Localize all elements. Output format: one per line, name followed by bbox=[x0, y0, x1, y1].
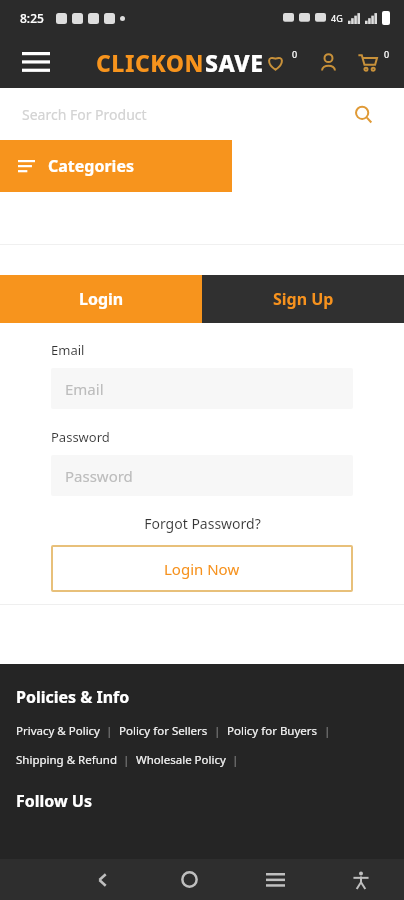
button[interactable]: Forgot Password? bbox=[51, 514, 353, 533]
staticText: Follow Us bbox=[16, 790, 92, 812]
staticText: Privacy & Policy bbox=[16, 723, 100, 739]
staticText: Sign Up bbox=[273, 288, 334, 310]
button[interactable]: Shipping & Refund bbox=[16, 752, 117, 768]
staticText: Password bbox=[51, 428, 110, 446]
button[interactable]: Search bbox=[350, 101, 376, 127]
staticText: SAVE bbox=[205, 47, 264, 78]
staticText: Forgot Password? bbox=[144, 514, 261, 533]
button[interactable]: Login bbox=[0, 275, 202, 323]
staticText: Login Now bbox=[164, 559, 240, 579]
staticText: Categories bbox=[48, 155, 134, 177]
button[interactable]: Recents bbox=[232, 859, 318, 900]
button[interactable]: Home bbox=[146, 859, 232, 900]
button[interactable]: Wholesale Policy bbox=[136, 752, 226, 768]
staticText: Policies & Info bbox=[16, 686, 130, 708]
staticText: | bbox=[232, 752, 239, 768]
button[interactable]: Email bbox=[65, 368, 353, 409]
staticText: 0 bbox=[384, 48, 390, 60]
staticText: Shipping & Refund bbox=[16, 752, 117, 768]
button[interactable]: Search For Product bbox=[0, 88, 404, 140]
button[interactable]: Categories bbox=[18, 140, 232, 192]
button[interactable]: Policy for Sellers bbox=[119, 723, 208, 739]
button[interactable]: Accessibility bbox=[318, 859, 404, 900]
button[interactable]: Account bbox=[314, 48, 342, 76]
button[interactable]: Cart bbox=[358, 48, 390, 76]
staticText: Email bbox=[51, 341, 85, 359]
staticText: Email bbox=[65, 379, 104, 399]
button[interactable]: Privacy & Policy bbox=[16, 723, 100, 739]
button[interactable]: Menu bbox=[16, 42, 56, 82]
staticText: CLICKON bbox=[96, 47, 205, 78]
button[interactable]: Wishlist bbox=[266, 48, 298, 76]
staticText: 0 bbox=[292, 48, 298, 60]
staticText: Policy for Buyers bbox=[227, 723, 318, 739]
button[interactable]: Policy for Buyers bbox=[227, 723, 318, 739]
staticText: Password bbox=[65, 466, 133, 486]
staticText: | bbox=[123, 752, 130, 768]
staticText: Login bbox=[79, 288, 124, 310]
staticText: | bbox=[324, 723, 331, 739]
button[interactable]: Sign Up bbox=[202, 275, 404, 323]
button[interactable]: Login Now bbox=[51, 545, 353, 592]
button[interactable]: Password bbox=[65, 455, 353, 496]
staticText: 4G bbox=[331, 12, 343, 24]
staticText: Search For Product bbox=[22, 105, 147, 124]
staticText: Wholesale Policy bbox=[136, 752, 226, 768]
button[interactable]: Back bbox=[60, 859, 146, 900]
staticText: | bbox=[214, 723, 221, 739]
staticText: 8:25 bbox=[20, 10, 44, 26]
staticText: | bbox=[106, 723, 113, 739]
staticText: Policy for Sellers bbox=[119, 723, 208, 739]
